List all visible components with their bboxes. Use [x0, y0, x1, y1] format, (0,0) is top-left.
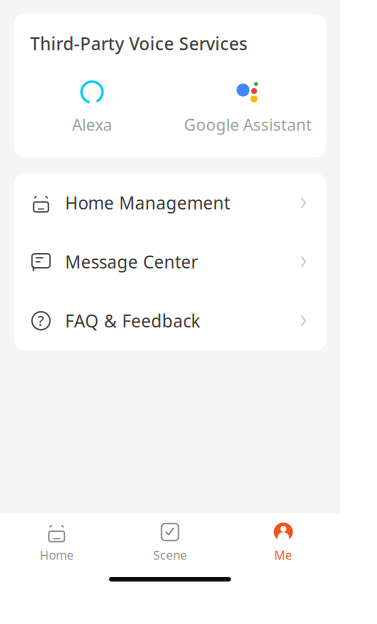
staticText: Alexa [72, 114, 112, 135]
button[interactable]: Home [0, 517, 113, 567]
button[interactable]: Scene [113, 517, 227, 567]
staticText: Home Management [65, 191, 230, 214]
button[interactable]: Me [227, 517, 340, 567]
button[interactable]: Alexa [14, 77, 170, 137]
staticText: Third-Party Voice Services [30, 32, 247, 55]
button[interactable]: ? [14, 291, 326, 350]
staticText: Message Center [65, 250, 198, 273]
button[interactable]: Home Management [14, 173, 326, 232]
staticText: Me [274, 547, 292, 563]
button[interactable]: Google Assistant [170, 77, 326, 137]
staticText: Google Assistant [184, 114, 312, 135]
button[interactable]: Message Center [14, 232, 326, 291]
staticText: Home [40, 547, 74, 563]
staticText: ? [37, 310, 44, 330]
staticText: FAQ & Feedback [65, 309, 200, 332]
staticText: Scene [153, 547, 187, 563]
